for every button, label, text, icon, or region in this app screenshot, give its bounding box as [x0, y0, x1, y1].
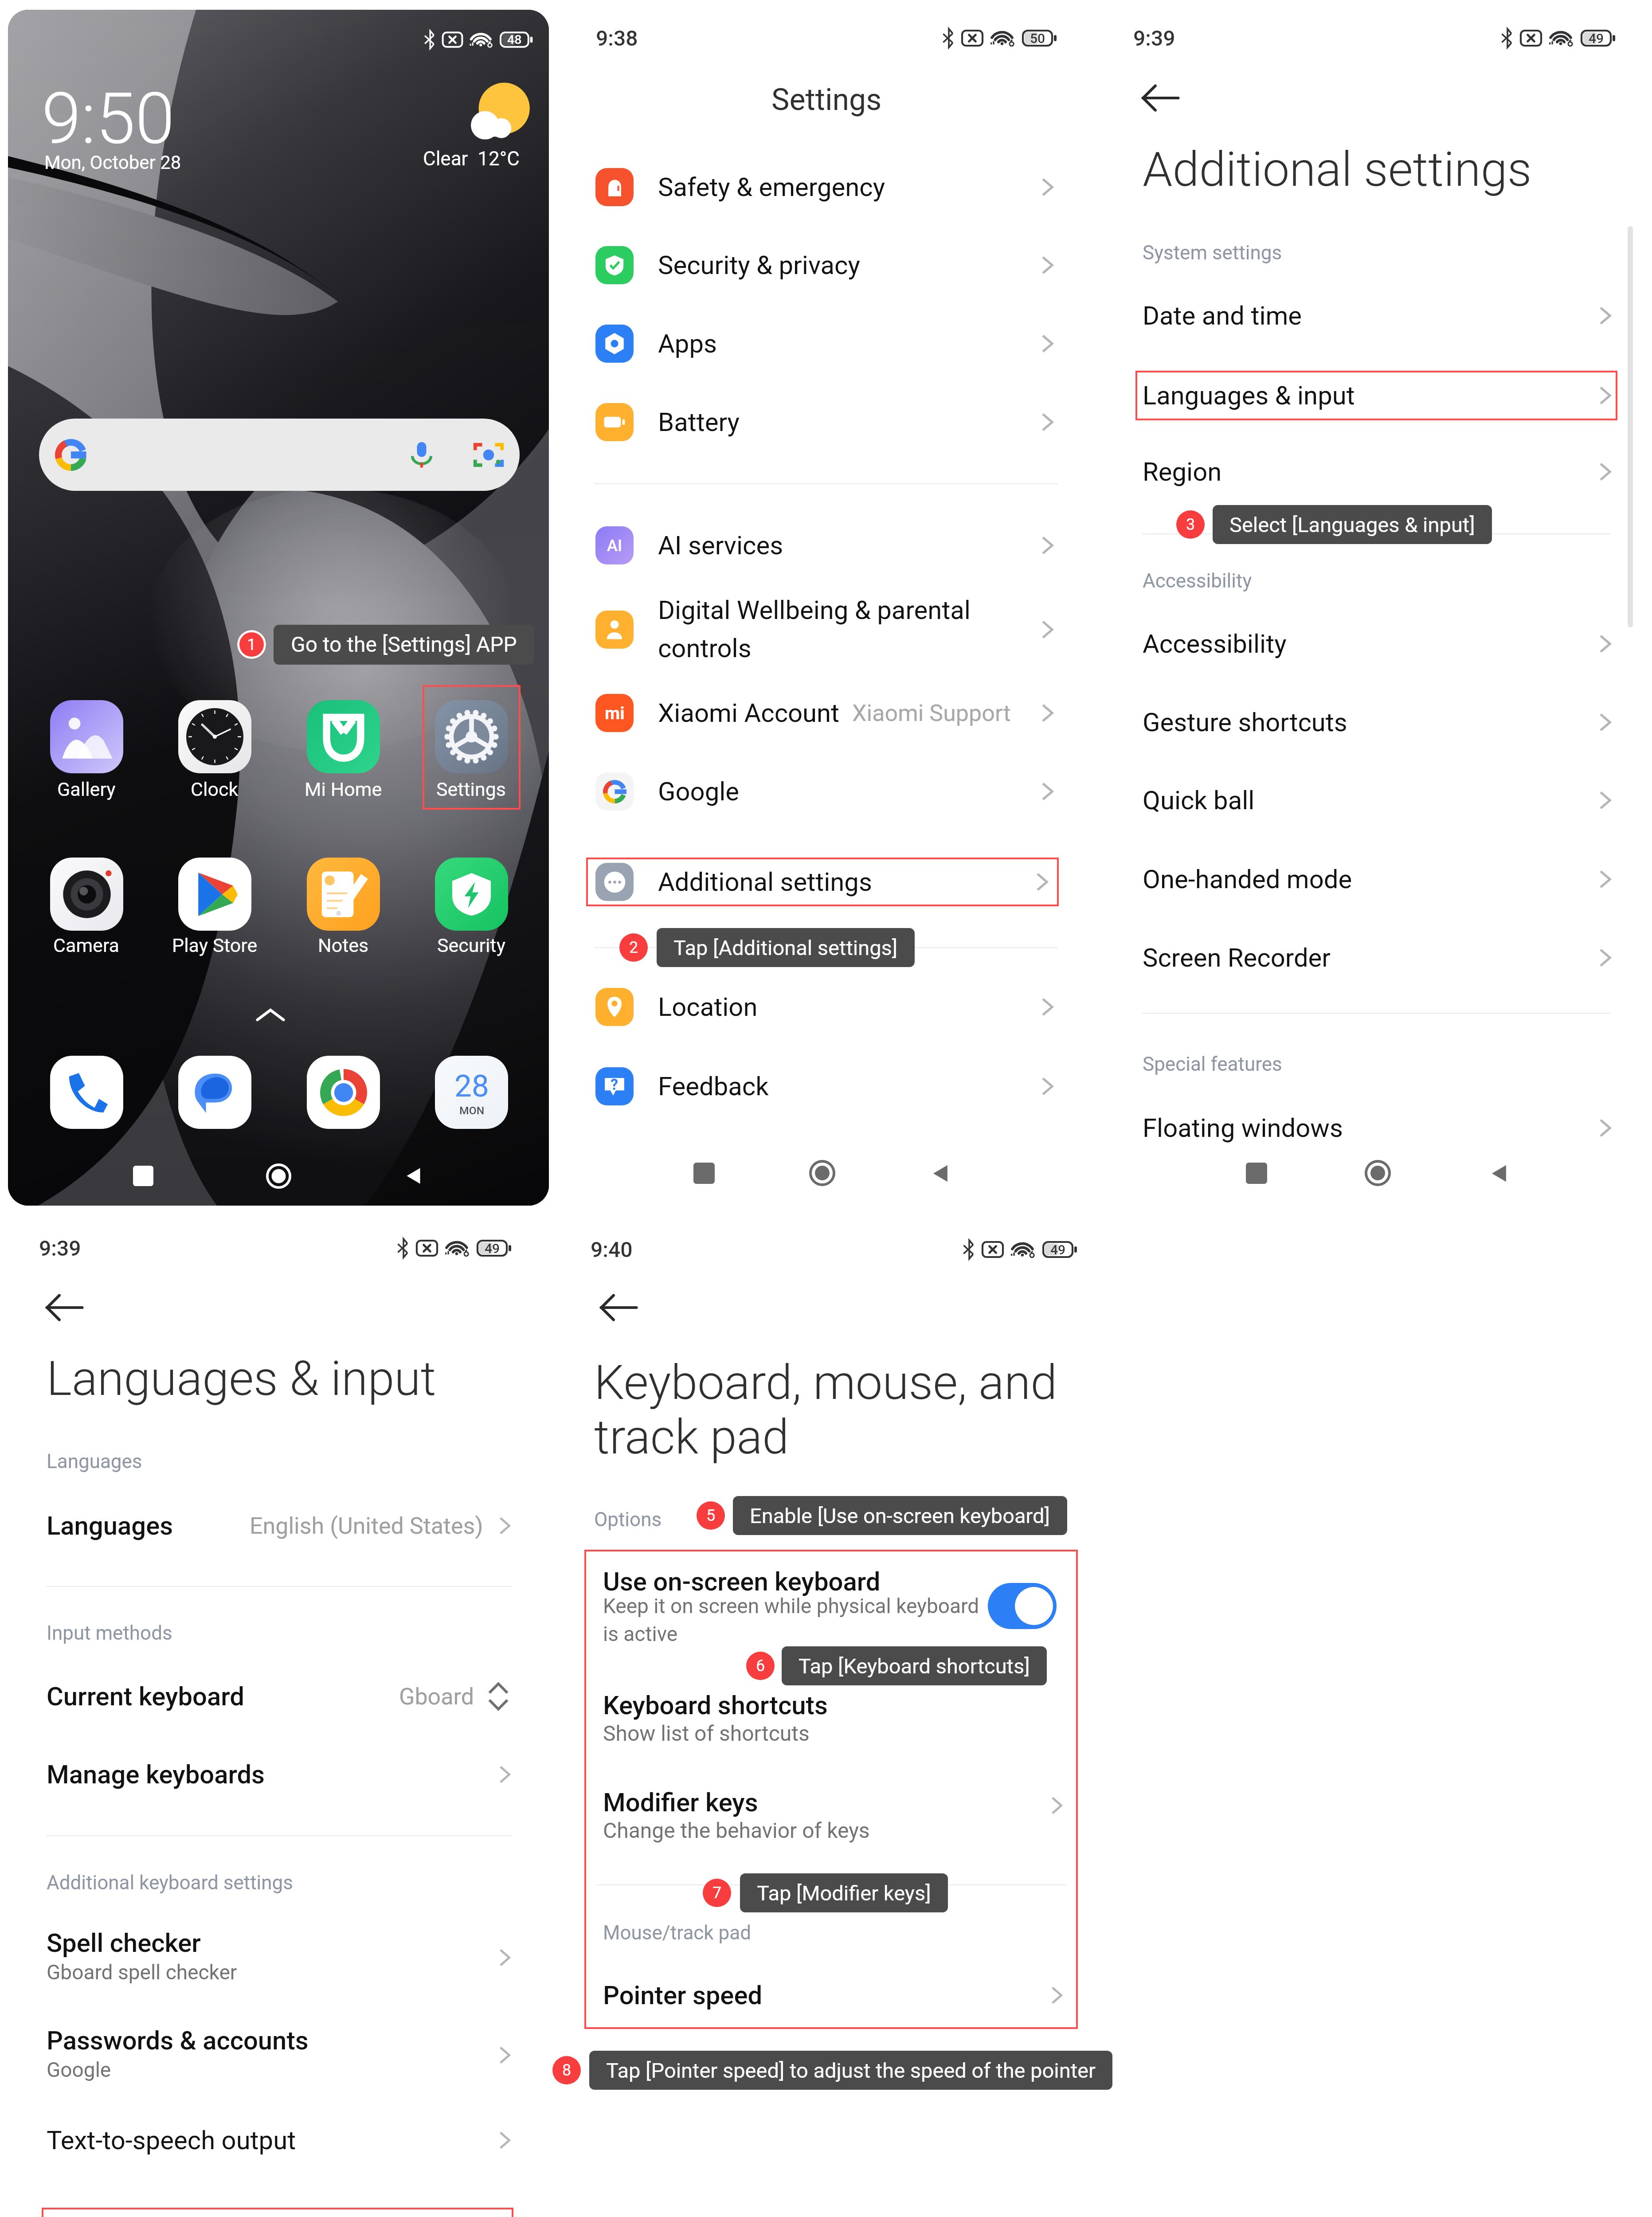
button[interactable]: Home: [1365, 1160, 1391, 1186]
button[interactable]: [1135, 435, 1617, 508]
staticText: 9:38: [596, 26, 638, 51]
staticText: Security: [437, 934, 505, 956]
button[interactable]: Home: [809, 1160, 835, 1186]
staticText: 2: [629, 938, 638, 957]
button[interactable]: [42, 2011, 513, 2099]
button[interactable]: [586, 149, 1059, 225]
button[interactable]: Open app drawer: [255, 1004, 286, 1026]
button[interactable]: [307, 700, 380, 818]
button[interactable]: Back: [1134, 71, 1187, 125]
button[interactable]: [42, 1913, 513, 2002]
staticText: Gboard spell checker: [47, 1960, 237, 1984]
staticText: Gallery: [57, 778, 116, 800]
staticText: Tap [Modifier keys]: [757, 1881, 931, 1905]
button[interactable]: [1135, 921, 1617, 994]
staticText: Tap [Additional settings]: [673, 936, 898, 960]
staticText: 49: [485, 1241, 500, 1256]
staticText: 7: [712, 1884, 722, 1902]
staticText: Region: [1143, 457, 1222, 487]
button[interactable]: [1135, 764, 1617, 837]
button[interactable]: [588, 1685, 1074, 1751]
staticText: Google: [658, 776, 740, 807]
staticText: Enable [Use on-screen keyboard]: [750, 1504, 1050, 1528]
staticText: Options: [594, 1508, 662, 1531]
staticText: Use on-screen keyboard: [603, 1567, 881, 1597]
button[interactable]: Chrome: [307, 1056, 380, 1129]
staticText: Additional settings: [1143, 141, 1532, 198]
button[interactable]: [586, 754, 1059, 829]
button[interactable]: [586, 384, 1059, 460]
button[interactable]: Recents: [133, 1166, 153, 1186]
staticText: Accessibility: [1143, 569, 1252, 592]
button[interactable]: Back: [1487, 1161, 1511, 1186]
button[interactable]: [42, 2208, 513, 2217]
staticText: 9:40: [591, 1237, 633, 1262]
button[interactable]: [1135, 686, 1617, 759]
button[interactable]: [178, 700, 251, 818]
staticText: MON: [459, 1104, 485, 1117]
button[interactable]: Recents: [693, 1163, 715, 1184]
staticText: Digital Wellbeing & parental controls: [658, 595, 971, 663]
button[interactable]: [1135, 1092, 1617, 1164]
button[interactable]: [586, 227, 1059, 303]
staticText: Languages: [47, 1511, 173, 1541]
button[interactable]: [1135, 359, 1617, 432]
staticText: Apps: [658, 329, 717, 359]
staticText: Xiaomi Account: [658, 698, 840, 728]
button[interactable]: [586, 306, 1059, 381]
button[interactable]: Back: [592, 1281, 645, 1334]
button[interactable]: [588, 1782, 1074, 1849]
staticText: Settings: [436, 778, 506, 800]
staticText: Safety & emergency: [658, 172, 885, 202]
staticText: Languages & input: [47, 1351, 436, 1407]
staticText: Additional settings: [658, 867, 872, 897]
button[interactable]: Calendar: [435, 1056, 508, 1129]
button[interactable]: [435, 858, 508, 975]
button[interactable]: [39, 419, 520, 491]
button[interactable]: [42, 1660, 513, 1733]
button[interactable]: [586, 585, 1059, 674]
staticText: AI services: [658, 530, 783, 560]
button[interactable]: [42, 1489, 513, 1562]
staticText: Xiaomi Support: [852, 700, 1011, 727]
button[interactable]: Voice search: [406, 439, 437, 470]
button[interactable]: [42, 2104, 513, 2177]
staticText: Pointer speed: [603, 1980, 763, 2010]
staticText: Manage keyboards: [47, 1759, 265, 1790]
button[interactable]: [586, 858, 1059, 906]
staticText: Gboard: [399, 1683, 474, 1710]
button[interactable]: [586, 508, 1059, 583]
button[interactable]: [435, 700, 508, 818]
button[interactable]: [588, 1969, 1074, 2022]
button[interactable]: [50, 700, 123, 818]
button[interactable]: [42, 1738, 513, 1811]
button[interactable]: Phone: [50, 1056, 123, 1129]
button[interactable]: Back: [402, 1164, 425, 1187]
button[interactable]: [178, 858, 251, 975]
staticText: Languages: [47, 1450, 142, 1473]
button[interactable]: [586, 969, 1059, 1045]
button[interactable]: Back: [928, 1161, 953, 1186]
button[interactable]: Google Lens: [473, 439, 505, 471]
button[interactable]: Back: [38, 1281, 91, 1334]
staticText: Modifier keys: [603, 1787, 758, 1817]
button[interactable]: Messages: [178, 1056, 251, 1129]
button[interactable]: [50, 858, 123, 975]
button[interactable]: [1135, 843, 1617, 916]
staticText: Settings: [771, 82, 882, 118]
button[interactable]: Recents: [1246, 1163, 1267, 1184]
staticText: Play Store: [172, 934, 258, 956]
button[interactable]: [588, 1556, 1074, 1654]
staticText: Clock: [191, 778, 239, 800]
button[interactable]: [1135, 607, 1617, 680]
button[interactable]: [586, 675, 1059, 751]
staticText: Input methods: [47, 1622, 172, 1645]
button[interactable]: [1135, 279, 1617, 352]
button[interactable]: Home: [266, 1163, 291, 1189]
staticText: Spell checker: [47, 1928, 201, 1958]
button[interactable]: [307, 858, 380, 975]
button[interactable]: [586, 1049, 1059, 1124]
staticText: 49: [1589, 31, 1604, 46]
staticText: Mi Home: [305, 778, 382, 800]
button[interactable]: [988, 1583, 1057, 1629]
